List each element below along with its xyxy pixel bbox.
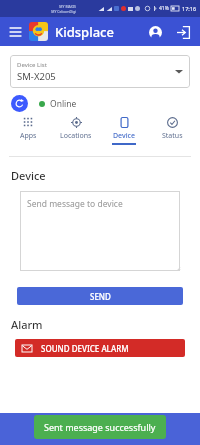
button[interactable]: Account bbox=[145, 22, 165, 42]
button[interactable]: SEND bbox=[17, 287, 183, 305]
staticText: SM-X205 bbox=[17, 70, 56, 83]
button[interactable]: Send message to device bbox=[20, 191, 180, 271]
staticText: SOUND DEVICE ALARM bbox=[41, 343, 129, 354]
button[interactable]: Refresh bbox=[11, 95, 28, 112]
button[interactable]: Device bbox=[100, 117, 148, 145]
button[interactable]: Apps bbox=[4, 117, 52, 145]
staticText: Send message to device bbox=[27, 198, 123, 210]
staticText: Locations bbox=[60, 131, 92, 141]
staticText: Sent message successfully bbox=[44, 421, 156, 433]
staticText: Alarm bbox=[11, 317, 43, 332]
button[interactable]: Device List bbox=[10, 55, 190, 88]
staticText: Apps bbox=[20, 131, 37, 141]
button[interactable]: Locations bbox=[52, 117, 100, 145]
button[interactable]: Status bbox=[148, 117, 196, 145]
staticText: Created by Kiddoware Devices, LLC 2019 bbox=[43, 425, 157, 433]
staticText: Device bbox=[113, 131, 136, 141]
staticText: 41% bbox=[159, 5, 169, 12]
staticText: Online bbox=[50, 98, 77, 110]
button[interactable]: SOUND DEVICE ALARM bbox=[15, 339, 185, 357]
staticText: MY MAXIS MY CelcomDigi bbox=[51, 4, 76, 14]
staticText: Status bbox=[162, 131, 183, 141]
staticText: Kidsplace bbox=[55, 23, 114, 41]
button[interactable]: Log out bbox=[173, 22, 193, 42]
staticText: Device bbox=[11, 168, 46, 183]
staticText: SEND bbox=[90, 291, 111, 302]
staticText: Device List bbox=[17, 61, 47, 69]
staticText: 17:16 bbox=[182, 5, 197, 12]
button[interactable]: Menu bbox=[7, 24, 23, 40]
